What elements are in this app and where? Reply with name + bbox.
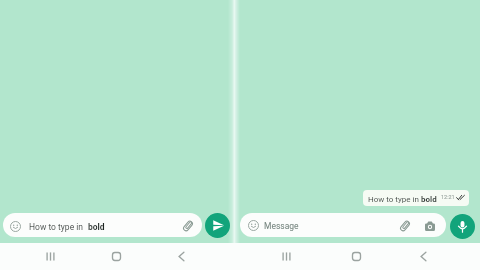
staticText: Message [264, 221, 299, 231]
staticText: bold [421, 195, 437, 204]
button[interactable]: Back [168, 243, 194, 269]
button[interactable]: Message [240, 213, 446, 237]
staticText: How to type in [368, 195, 421, 204]
staticText: 12:21 [441, 194, 455, 200]
button[interactable]: Home [343, 243, 369, 269]
button[interactable]: Back [410, 243, 436, 269]
button[interactable]: Home [103, 243, 129, 269]
button[interactable]: Recent apps [37, 243, 63, 269]
staticText: How to type in [29, 222, 88, 232]
button[interactable]: Send [205, 213, 230, 238]
button[interactable]: How to type in [3, 213, 202, 237]
button[interactable]: Voice message [450, 214, 475, 239]
button[interactable]: How to type in [363, 190, 469, 206]
button[interactable]: Recent apps [273, 243, 299, 269]
staticText: bold [88, 222, 105, 232]
